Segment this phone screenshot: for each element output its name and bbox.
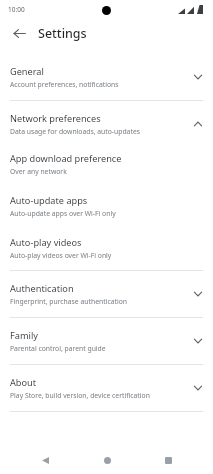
staticText: Auto-update apps over Wi-Fi only xyxy=(10,209,116,218)
staticText: Auto-update apps xyxy=(10,194,88,207)
staticText: Auto-play videos xyxy=(10,236,82,249)
staticText: App download preference xyxy=(10,152,122,165)
staticText: Fingerprint, purchase authentication xyxy=(10,297,127,306)
button[interactable]: Back xyxy=(6,20,32,46)
button[interactable]: Back xyxy=(28,446,62,474)
button[interactable]: Family xyxy=(0,318,213,364)
staticText: Settings xyxy=(38,25,87,42)
staticText: Parental control, parent guide xyxy=(10,344,106,353)
button[interactable]: General xyxy=(0,54,213,100)
button[interactable]: Home xyxy=(90,446,124,474)
button[interactable]: Network preferences xyxy=(0,101,213,143)
button[interactable]: Auto-update apps xyxy=(0,185,213,227)
button[interactable]: About xyxy=(0,365,213,411)
staticText: Account preferences, notifications xyxy=(10,80,119,89)
staticText: 10:00 xyxy=(8,5,25,14)
button[interactable]: Auto-play videos xyxy=(0,227,213,270)
staticText: Data usage for downloads, auto-updates xyxy=(10,127,140,136)
staticText: Play Store, build version, device certif… xyxy=(10,391,150,400)
staticText: Family xyxy=(10,329,38,342)
button[interactable]: Authentication xyxy=(0,271,213,317)
button[interactable]: App download preference xyxy=(0,143,213,185)
staticText: Over any network xyxy=(10,167,67,176)
staticText: General xyxy=(10,65,44,78)
staticText: Authentication xyxy=(10,282,74,295)
staticText: Network preferences xyxy=(10,112,101,125)
button[interactable]: Recent apps xyxy=(151,446,185,474)
staticText: About xyxy=(10,376,37,389)
staticText: Auto-play videos over Wi-Fi only xyxy=(10,251,112,260)
